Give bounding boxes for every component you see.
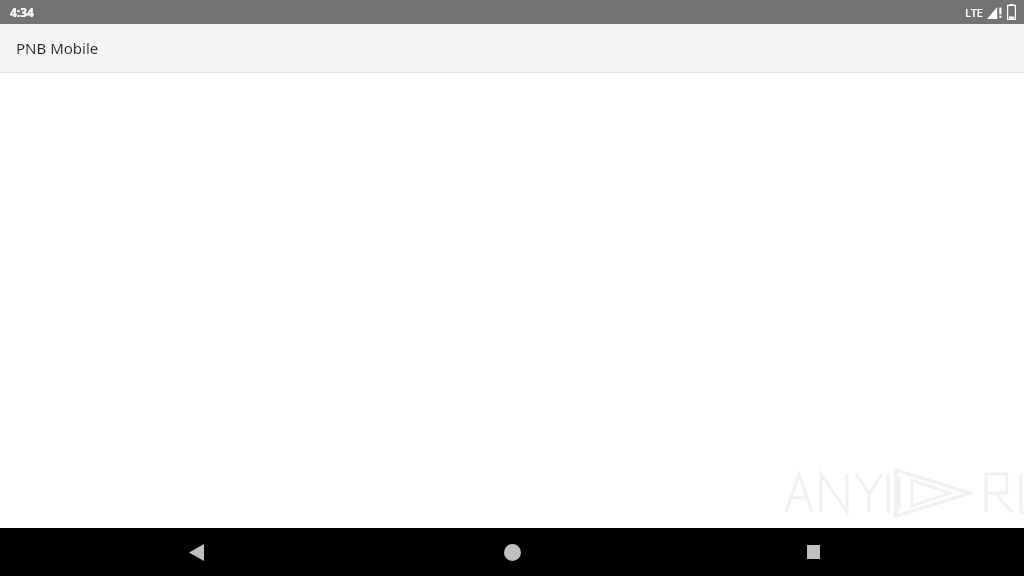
button[interactable]: Home [488, 528, 536, 576]
button[interactable]: PNB Mobile [0, 24, 1024, 72]
staticText: LTE [965, 5, 983, 20]
staticText: 4:34 [10, 4, 34, 20]
button[interactable]: Recent apps [789, 528, 837, 576]
button[interactable]: Back [172, 528, 220, 576]
staticText: PNB Mobile [16, 38, 99, 58]
